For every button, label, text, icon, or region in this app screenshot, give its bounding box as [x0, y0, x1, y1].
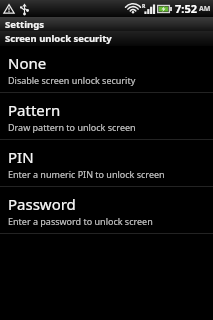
staticText: Pattern — [8, 100, 61, 120]
staticText: Enter a password to unlock screen — [8, 215, 153, 227]
staticText: R — [142, 3, 146, 10]
staticText: Draw pattern to unlock screen — [8, 121, 136, 133]
staticText: Disable screen unlock security — [8, 74, 136, 86]
button[interactable]: PIN — [0, 140, 213, 186]
button[interactable]: Pattern — [0, 93, 213, 139]
button[interactable]: None — [0, 46, 213, 92]
staticText: Screen unlock security — [5, 32, 112, 45]
staticText: Enter a numeric PIN to unlock screen — [8, 168, 165, 180]
staticText: 7:52 — [175, 1, 197, 16]
staticText: PIN — [8, 147, 34, 167]
button[interactable]: Password — [0, 187, 213, 233]
staticText: AM — [199, 4, 211, 14]
staticText: Settings — [5, 18, 44, 31]
staticText: Password — [8, 194, 76, 214]
staticText: None — [8, 53, 47, 73]
